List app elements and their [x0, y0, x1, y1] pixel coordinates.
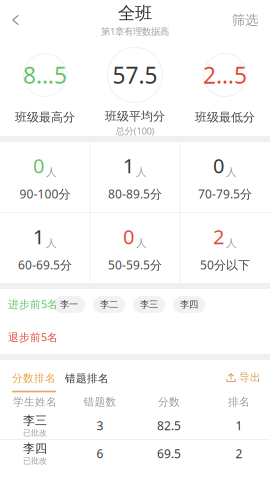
staticText: 已批改 [23, 428, 47, 438]
staticText: 80-89.5分 [108, 186, 162, 202]
staticText: 错题排名 [65, 372, 109, 385]
staticText: 1 [123, 152, 134, 179]
staticText: 50-59.5分 [108, 257, 162, 273]
staticText: 李四 [180, 299, 198, 310]
staticText: 李三 [23, 413, 47, 428]
staticText: 8…5 [23, 60, 67, 90]
staticText: 人 [46, 237, 57, 250]
staticText: 69.5 [157, 445, 181, 461]
staticText: 60-69.5分 [18, 257, 72, 273]
staticText: 分数排名 [12, 372, 56, 385]
button[interactable]: 筛选 [220, 0, 270, 40]
staticText: 班级最高分 [15, 110, 75, 125]
staticText: 人 [226, 166, 237, 179]
staticText: 50分以下 [200, 257, 250, 273]
staticText: 1 [235, 417, 242, 433]
staticText: 筛选 [232, 12, 258, 28]
staticText: 第1章有理数据高 [101, 25, 169, 37]
staticText: 2…5 [203, 60, 247, 90]
staticText: 李二 [100, 299, 118, 310]
staticText: 人 [136, 237, 147, 250]
staticText: 2 [213, 223, 224, 250]
staticText: 70-79.5分 [198, 186, 252, 202]
staticText: 李三 [140, 299, 158, 310]
staticText: 进步前5名 [8, 297, 58, 311]
staticText: 1 [33, 223, 44, 250]
staticText: 6 [96, 445, 103, 461]
staticText: 退步前5名 [8, 330, 58, 344]
staticText: 总分(100) [115, 125, 154, 137]
staticText: 已批改 [23, 456, 47, 466]
button[interactable]: 李二 [93, 296, 125, 313]
button[interactable]: 导出 [226, 360, 270, 392]
button[interactable]: 错题排名 [65, 360, 109, 392]
button[interactable]: 李四 [0, 440, 270, 467]
button[interactable]: 李三 [133, 296, 165, 313]
staticText: 李四 [23, 441, 47, 456]
staticText: 57.5 [112, 60, 157, 90]
staticText: 学生姓名 [13, 395, 57, 408]
button[interactable]: 李三 [0, 412, 270, 439]
button[interactable]: 分数排名 [12, 360, 56, 392]
staticText: 82.5 [157, 417, 181, 433]
staticText: 人 [136, 166, 147, 179]
staticText: 李一 [60, 299, 78, 310]
staticText: 人 [46, 166, 57, 179]
staticText: 2 [235, 445, 242, 461]
button[interactable]: Back [0, 0, 50, 40]
staticText: 导出 [239, 371, 261, 384]
staticText: 全班 [118, 3, 152, 24]
staticText: 3 [96, 417, 103, 433]
button[interactable]: 李四 [173, 296, 205, 313]
staticText: 0 [33, 152, 44, 179]
staticText: 错题数 [83, 395, 116, 408]
staticText: 人 [226, 237, 237, 250]
staticText: 分数 [158, 395, 180, 408]
staticText: 0 [123, 223, 134, 250]
staticText: 0 [213, 152, 224, 179]
staticText: 班级平均分 [105, 109, 165, 124]
staticText: 班级最低分 [195, 110, 255, 125]
button[interactable]: 李一 [53, 296, 85, 313]
staticText: 90-100分 [19, 186, 70, 202]
staticText: 排名 [228, 395, 250, 408]
